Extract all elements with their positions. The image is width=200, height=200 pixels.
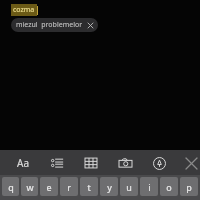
button[interactable]: o (160, 177, 178, 196)
button[interactable]: Camera (116, 152, 134, 174)
staticText: cozma (13, 5, 35, 15)
staticText: t (87, 181, 91, 193)
staticText: Aa (17, 156, 29, 170)
button[interactable]: Remove tag (87, 22, 94, 29)
button[interactable]: q (2, 177, 19, 196)
button[interactable]: Lists (48, 152, 66, 174)
staticText: w (26, 181, 34, 193)
staticText: p (186, 181, 192, 193)
button[interactable]: Markup (150, 152, 168, 174)
button[interactable]: Insert table (82, 152, 100, 174)
button[interactable]: t (80, 177, 98, 196)
button[interactable]: r (60, 177, 78, 196)
button[interactable]: i (140, 177, 158, 196)
button[interactable]: w (21, 177, 38, 196)
button[interactable]: miezul problemelor (11, 18, 98, 32)
staticText: r (67, 181, 71, 193)
staticText: y (107, 181, 112, 193)
button[interactable]: u (120, 177, 138, 196)
button[interactable]: Text format (14, 152, 32, 174)
staticText: miezul problemelor (16, 20, 83, 30)
button[interactable]: p (180, 177, 198, 196)
button[interactable]: Dismiss keyboard (182, 152, 200, 174)
button[interactable]: e (40, 177, 58, 196)
staticText: o (166, 181, 172, 193)
button[interactable]: y (100, 177, 118, 196)
staticText: u (126, 181, 132, 193)
staticText: i (148, 181, 151, 193)
staticText: e (46, 181, 52, 193)
staticText: q (8, 181, 14, 193)
